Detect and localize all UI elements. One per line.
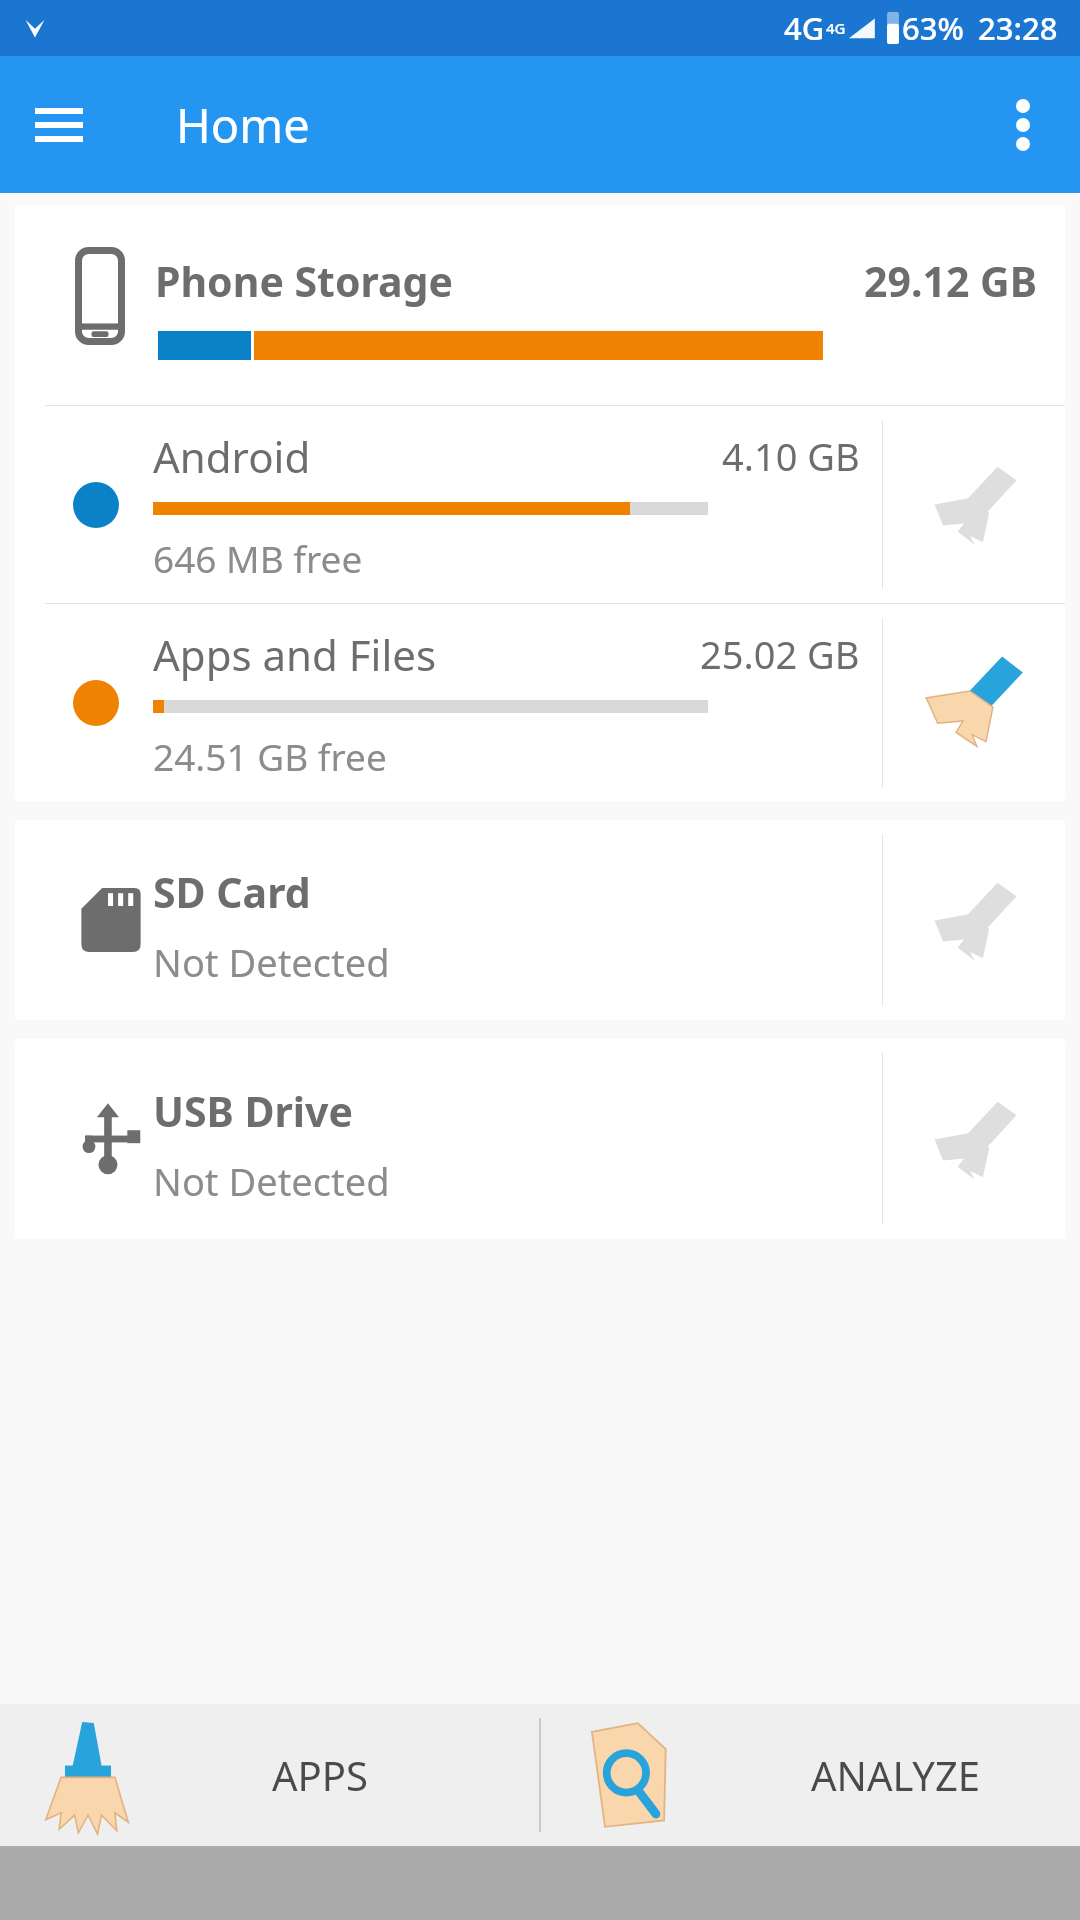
staticText: SD Card bbox=[153, 864, 311, 920]
staticText: 4.10 GB bbox=[722, 430, 860, 482]
button[interactable]: Phone Storage bbox=[15, 205, 1065, 405]
staticText: Home bbox=[176, 93, 310, 157]
staticText: APPS bbox=[272, 1748, 368, 1802]
button[interactable]: SD Card bbox=[15, 820, 1065, 1020]
button[interactable]: Clean Android bbox=[883, 406, 1065, 603]
button[interactable]: Open navigation drawer bbox=[24, 90, 94, 160]
staticText: 63% bbox=[902, 7, 964, 49]
button[interactable]: Android bbox=[15, 406, 1065, 603]
staticText: 23:28 bbox=[978, 7, 1058, 49]
staticText: 24.51 GB free bbox=[153, 731, 387, 781]
staticText: Not Detected bbox=[153, 936, 390, 988]
button[interactable]: Apps and Files bbox=[15, 604, 1065, 801]
staticText: USB Drive bbox=[153, 1083, 353, 1139]
staticText: 4G bbox=[784, 7, 825, 49]
button[interactable]: APPS bbox=[0, 1704, 539, 1846]
staticText: 646 MB free bbox=[153, 533, 363, 583]
button[interactable]: Clean Apps and Files bbox=[883, 604, 1065, 801]
button[interactable]: Clean USB Drive bbox=[883, 1039, 1065, 1239]
button[interactable]: USB Drive bbox=[15, 1039, 1065, 1239]
staticText: Not Detected bbox=[153, 1155, 390, 1207]
button[interactable]: Clean SD Card bbox=[883, 820, 1065, 1020]
staticText: 29.12 GB bbox=[864, 253, 1037, 309]
staticText: Apps and Files bbox=[153, 626, 437, 683]
button[interactable]: ANALYZE bbox=[541, 1704, 1080, 1846]
staticText: Android bbox=[153, 428, 311, 485]
staticText: 4G bbox=[826, 18, 846, 38]
staticText: 25.02 GB bbox=[700, 628, 860, 680]
staticText: Phone Storage bbox=[155, 253, 453, 309]
button[interactable]: More options bbox=[988, 90, 1058, 160]
staticText: ANALYZE bbox=[811, 1748, 981, 1802]
